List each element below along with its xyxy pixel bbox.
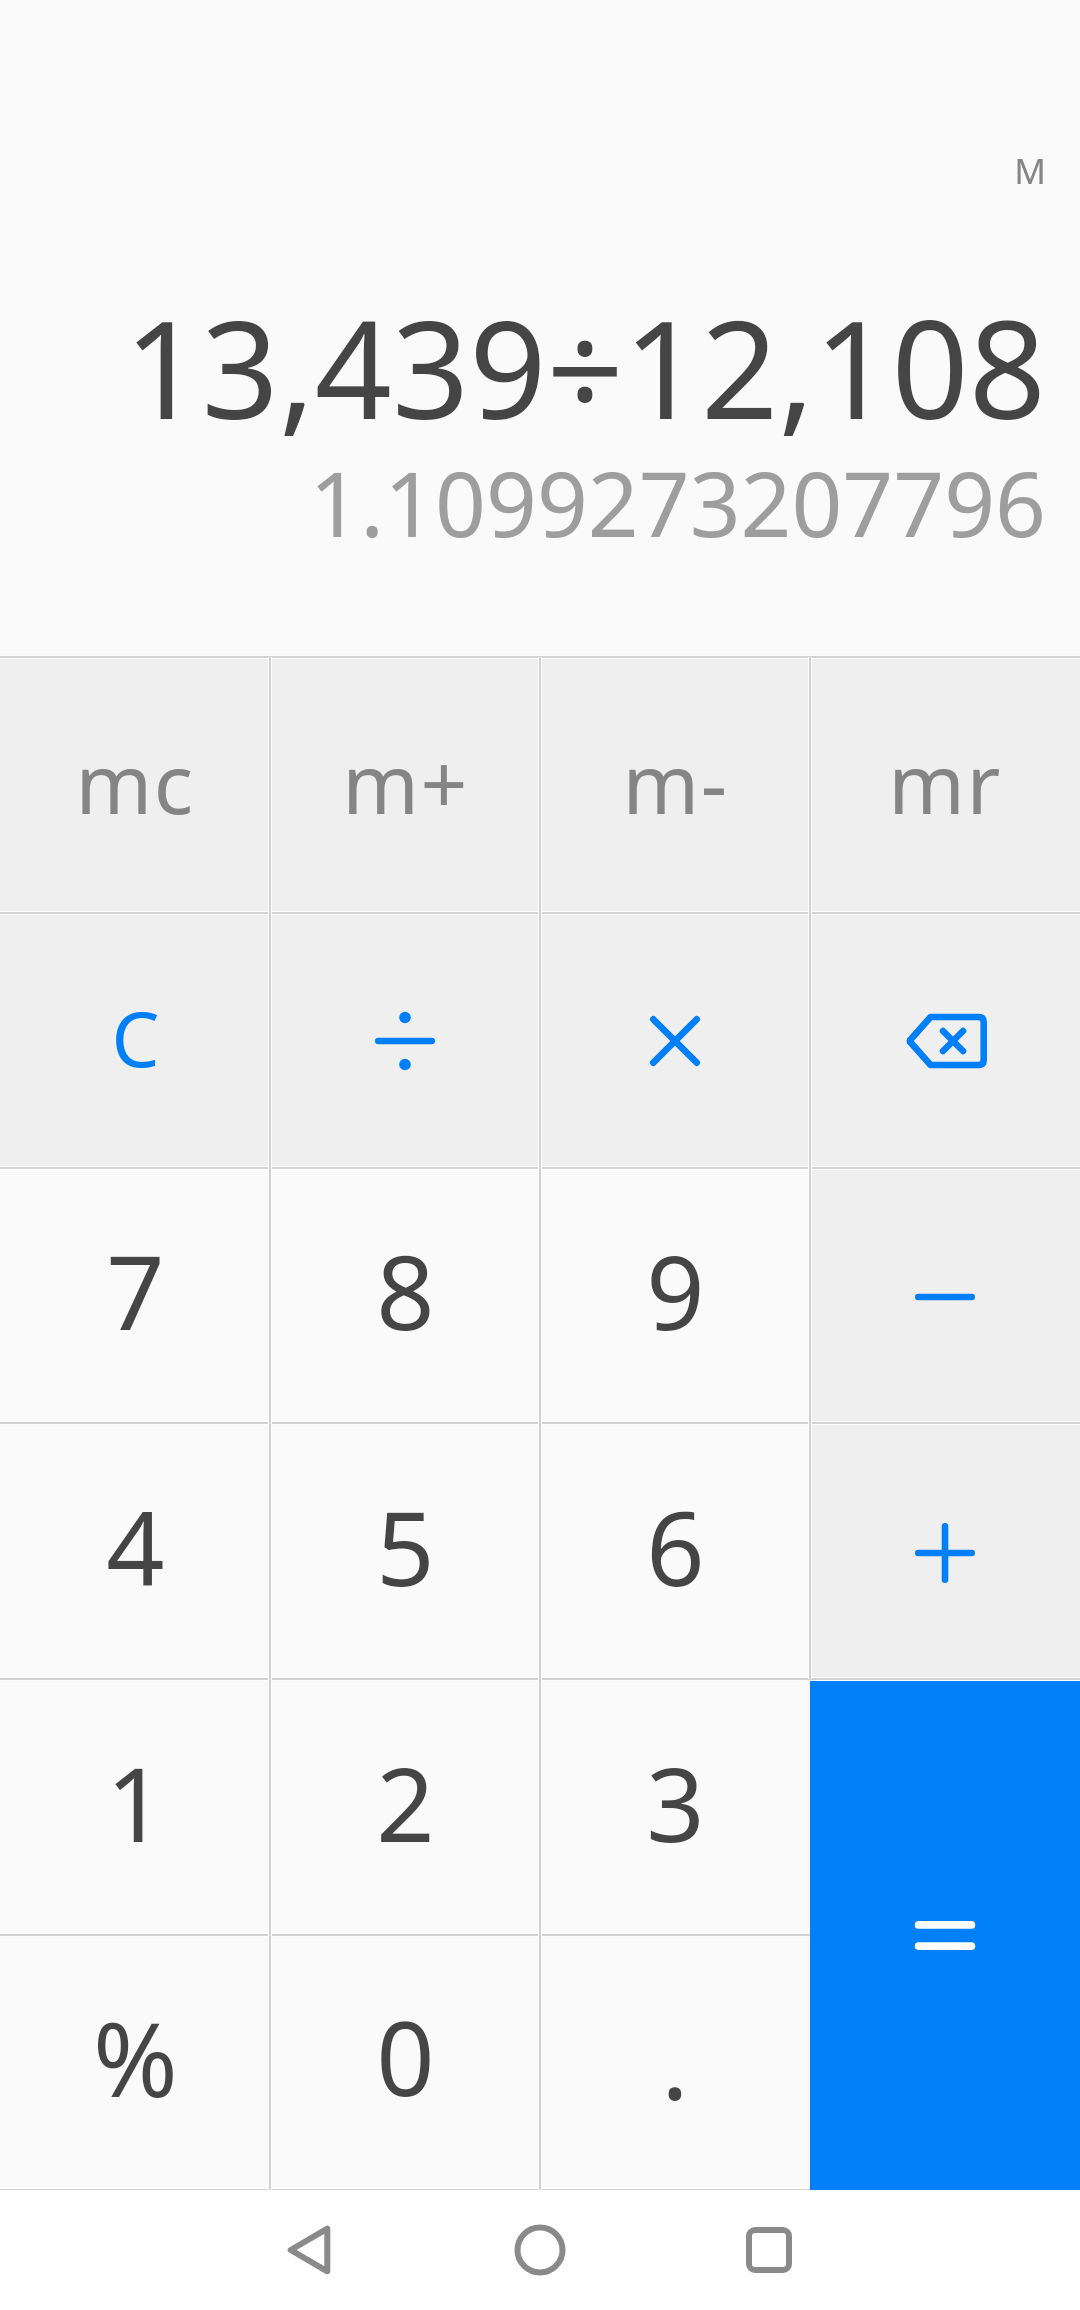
button[interactable]: . — [540, 1937, 810, 2190]
staticText: . — [661, 1991, 689, 2130]
staticText: 2 — [376, 1733, 435, 1872]
button[interactable]: Home — [430, 2190, 650, 2310]
staticText: C — [111, 986, 160, 1090]
staticText: 0 — [376, 1987, 435, 2126]
button[interactable]: 7 — [0, 1169, 270, 1425]
staticText: 7 — [106, 1221, 165, 1360]
staticText: m- — [622, 726, 729, 838]
staticText: 6 — [646, 1477, 705, 1616]
button[interactable]: Minus — [810, 1169, 1080, 1425]
button[interactable]: 0 — [270, 1937, 540, 2190]
button[interactable]: m+ — [270, 657, 540, 913]
staticText: 1 — [106, 1733, 165, 1872]
button[interactable]: 3 — [540, 1681, 810, 1937]
button[interactable]: % — [0, 1937, 270, 2190]
staticText: 8 — [376, 1221, 435, 1360]
button[interactable]: Plus — [810, 1425, 1080, 1681]
staticText: m+ — [342, 726, 469, 838]
button[interactable]: 4 — [0, 1425, 270, 1681]
staticText: 5 — [376, 1477, 435, 1616]
staticText: 1.1099273207796 — [0, 442, 1046, 563]
staticText: mr — [888, 726, 1002, 838]
staticText: 9 — [646, 1221, 705, 1360]
staticText: 3 — [646, 1733, 705, 1872]
button[interactable]: 1 — [0, 1681, 270, 1937]
staticText: 4 — [106, 1477, 165, 1616]
button[interactable]: 6 — [540, 1425, 810, 1681]
button[interactable]: 2 — [270, 1681, 540, 1937]
button[interactable]: Equals — [810, 1679, 1080, 2190]
button[interactable]: m- — [540, 657, 810, 913]
staticText: 13,439÷12,108 — [0, 275, 1046, 459]
button[interactable]: Recents — [659, 2190, 879, 2310]
staticText: % — [93, 1988, 178, 2127]
button[interactable]: 9 — [540, 1169, 810, 1425]
staticText: M — [0, 147, 1046, 195]
button[interactable]: 5 — [270, 1425, 540, 1681]
button[interactable]: Back — [199, 2190, 419, 2310]
button[interactable]: C — [0, 913, 270, 1169]
button[interactable]: mr — [810, 657, 1080, 913]
button[interactable]: Multiply — [540, 913, 810, 1169]
button[interactable]: Divide — [270, 913, 540, 1169]
button[interactable]: 8 — [270, 1169, 540, 1425]
button[interactable]: Backspace — [810, 913, 1080, 1169]
button[interactable]: mc — [0, 657, 270, 913]
staticText: mc — [75, 726, 195, 838]
